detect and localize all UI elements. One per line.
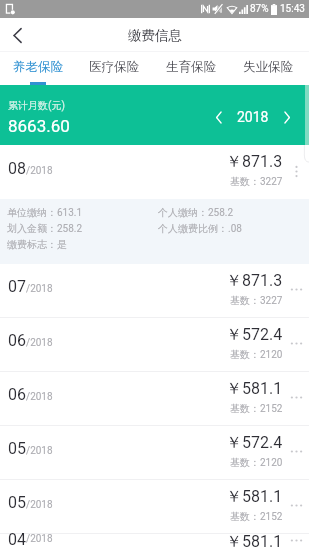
button[interactable]: More options (285, 277, 307, 301)
staticText: 08 (8, 159, 26, 178)
staticText: 87% (250, 3, 269, 15)
staticText: 基数：2120 (230, 456, 283, 469)
staticText: 07 (8, 277, 26, 296)
button[interactable]: More options (285, 331, 307, 355)
button[interactable]: 失业保险 (229, 52, 306, 85)
staticText: 缴费信息 (128, 27, 182, 44)
button[interactable]: 04 (0, 534, 309, 550)
staticText: /2018 (26, 165, 53, 177)
staticText: 医疗保险 (89, 59, 139, 75)
staticText: ￥572.4 (226, 325, 283, 345)
button[interactable]: 05 (0, 426, 309, 480)
staticText: 生育保险 (166, 59, 216, 75)
staticText: 基数：2152 (230, 402, 283, 415)
button[interactable]: Previous year (211, 109, 227, 125)
button[interactable]: More options (285, 159, 307, 183)
button[interactable]: Next year (279, 109, 295, 125)
button[interactable]: More options (285, 493, 307, 517)
button[interactable]: More options (285, 385, 307, 409)
button[interactable]: 06 (0, 318, 309, 372)
staticText: 基数：2152 (230, 510, 283, 523)
staticText: /2018 (26, 283, 53, 295)
staticText: 基数：2120 (230, 348, 283, 361)
button[interactable]: 生育保险 (152, 52, 229, 85)
staticText: ￥871.3 (226, 271, 283, 291)
staticText: 06 (8, 385, 26, 404)
button[interactable]: More options (285, 532, 307, 548)
staticText: 05 (8, 439, 26, 458)
staticText: 06 (8, 331, 26, 350)
staticText: /2018 (26, 499, 53, 511)
button[interactable]: More options (285, 439, 307, 463)
staticText: /2018 (26, 445, 53, 457)
staticText: 划入金额：258.2 (7, 222, 83, 235)
button[interactable]: 养老保险 (0, 52, 76, 85)
staticText: 8663.60 (8, 116, 70, 136)
staticText: 累计月数(元) (8, 99, 65, 112)
button[interactable]: 07 (0, 264, 309, 318)
staticText: /2018 (26, 533, 53, 545)
staticText: 05 (8, 493, 26, 512)
staticText: 个人缴纳：258.2 (158, 206, 234, 219)
button[interactable]: Back (0, 18, 34, 52)
staticText: 失业保险 (243, 59, 293, 75)
staticText: 04 (8, 530, 26, 546)
staticText: /2018 (26, 337, 53, 349)
button[interactable]: 医疗保险 (76, 52, 152, 85)
button[interactable]: 08 (0, 145, 309, 199)
staticText: 单位缴纳：613.1 (7, 206, 83, 219)
staticText: /2018 (26, 391, 53, 403)
staticText: ￥572.4 (226, 433, 283, 453)
staticText: ￥581.1 (226, 532, 283, 548)
staticText: 个人缴费比例：.08 (158, 222, 242, 235)
staticText: ￥581.1 (226, 379, 283, 399)
staticText: 养老保险 (13, 59, 63, 75)
staticText: 15:43 (280, 3, 305, 15)
staticText: 基数：3227 (230, 294, 283, 307)
staticText: 基数：3227 (230, 175, 283, 188)
button[interactable]: 05 (0, 480, 309, 534)
button[interactable]: 06 (0, 372, 309, 426)
staticText: ￥871.3 (226, 152, 283, 172)
staticText: 缴费标志：是 (7, 238, 67, 251)
staticText: ￥581.1 (226, 487, 283, 507)
staticText: 2018 (237, 109, 269, 125)
